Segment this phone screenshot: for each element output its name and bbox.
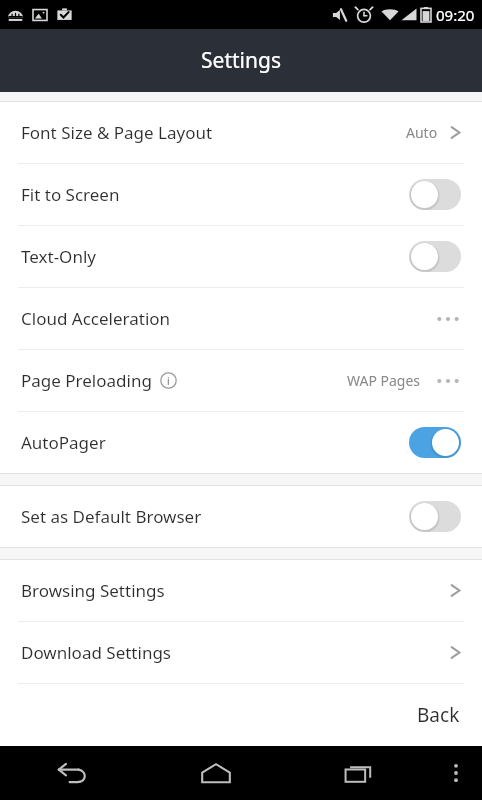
button[interactable]: Text-Only [0,226,482,287]
other: More options [435,371,461,391]
staticText: AutoPager [21,431,106,454]
button[interactable]: Home [144,746,287,800]
staticText: Page Preloading [21,369,152,392]
button[interactable]: Download Settings [0,622,482,683]
button[interactable]: On [409,427,461,458]
other: Open [450,123,461,142]
staticText: Set as Default Browser [21,505,202,528]
button[interactable]: Set as Default Browser [0,486,482,547]
button[interactable]: Back [0,684,482,746]
button[interactable]: Back [0,746,144,800]
button[interactable]: Off [409,501,461,532]
button[interactable]: Off [409,241,461,272]
button[interactable]: Menu [430,746,482,800]
staticText: Font Size & Page Layout [21,121,213,144]
staticText: i [167,374,170,388]
staticText: WAP Pages [347,371,421,390]
staticText: Back [417,702,460,728]
button[interactable]: AutoPager [0,412,482,473]
button[interactable]: Font Size & Page Layout [0,102,482,163]
staticText: Auto [406,123,438,142]
staticText: Browsing Settings [21,579,165,602]
other: Open [450,643,461,662]
staticText: Fit to Screen [21,183,120,206]
button[interactable]: Page Preloading [0,350,482,411]
button[interactable]: Cloud Acceleration [0,288,482,349]
staticText: Cloud Acceleration [21,307,171,330]
button[interactable]: Recent apps [287,746,430,800]
staticText: 09:20 [436,5,475,25]
staticText: Text-Only [21,245,96,268]
button[interactable]: Fit to Screen [0,164,482,225]
button[interactable]: Browsing Settings [0,560,482,621]
staticText: Download Settings [21,641,171,664]
staticText: Settings [201,46,281,75]
other: More options [435,309,461,329]
other: Open [450,581,461,600]
button[interactable]: Off [409,179,461,210]
